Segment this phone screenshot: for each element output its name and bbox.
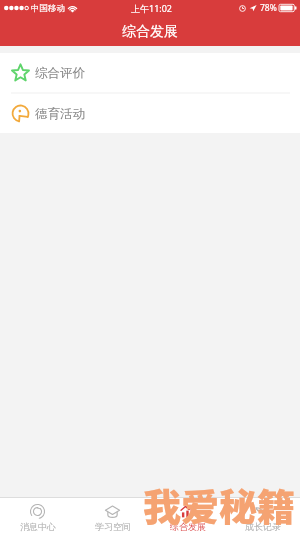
staticText: 综合评价 [35,65,85,81]
button[interactable]: 综合评价 [0,53,300,92]
staticText: 上午11:02 [131,2,173,14]
staticText: 消息中心 [20,521,56,532]
staticText: 综合发展 [122,23,178,41]
staticText: 德育活动 [35,106,85,122]
button[interactable]: 消息中心 [0,498,75,533]
staticText: 78% [260,2,277,14]
staticText: 学习空间 [95,521,131,532]
button[interactable]: 德育活动 [0,94,300,133]
staticText: 中国移动 [31,3,65,14]
staticText: 综合发展 [170,521,206,532]
button[interactable]: 综合发展 [150,498,225,533]
staticText: 我爱秘籍 [143,477,296,532]
staticText: 成长记录 [245,521,281,532]
button[interactable]: 学习空间 [75,498,150,533]
button[interactable]: 成长记录 [225,498,300,533]
